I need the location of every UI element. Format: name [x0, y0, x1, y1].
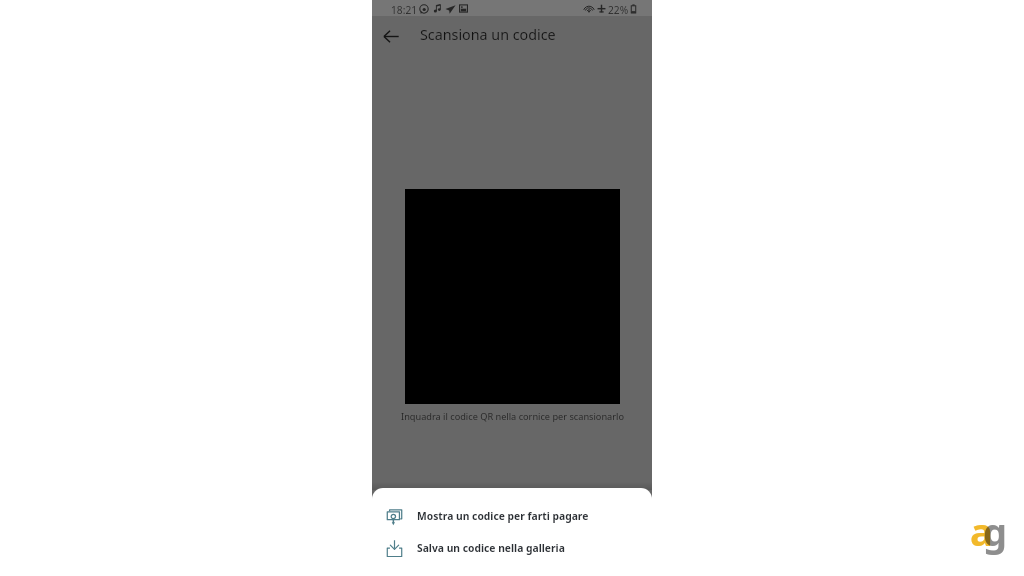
staticText: Salva un codice nella galleria [417, 541, 565, 555]
staticText: 18:21 [391, 3, 418, 17]
staticText: Inquadra il codice QR nella cornice per … [401, 410, 624, 423]
staticText: Scansiona un codice [420, 25, 556, 44]
button[interactable]: Mostra un codice per farti pagare [372, 501, 652, 531]
button[interactable]: Back [379, 24, 403, 48]
staticText: 22% [608, 3, 629, 17]
staticText: Mostra un codice per farti pagare [417, 509, 589, 523]
button[interactable]: Salva un codice nella galleria [372, 533, 652, 563]
